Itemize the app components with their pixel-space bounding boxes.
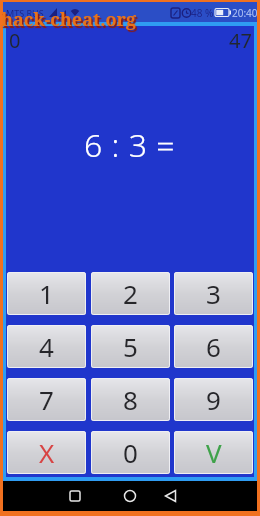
staticText: V	[206, 435, 222, 470]
button[interactable]: 5	[91, 325, 170, 368]
button[interactable]: 4	[7, 325, 86, 368]
button[interactable]: 0	[91, 431, 170, 474]
button[interactable]: 8	[91, 378, 170, 421]
staticText: 47	[229, 27, 252, 54]
staticText: 3	[206, 276, 221, 311]
button[interactable]: 3	[174, 272, 253, 315]
button[interactable]: X	[7, 431, 86, 474]
button[interactable]	[105, 481, 155, 511]
staticText: 9	[206, 382, 221, 417]
button[interactable]	[155, 481, 205, 511]
staticText: 0	[123, 435, 138, 470]
button[interactable]: 2	[91, 272, 170, 315]
staticText: 5	[123, 329, 138, 364]
staticText: 20:40	[232, 6, 258, 20]
button[interactable]: 1	[7, 272, 86, 315]
staticText: 7	[39, 382, 54, 417]
button[interactable]: V	[174, 431, 253, 474]
button[interactable]: 6	[174, 325, 253, 368]
staticText: 48 %	[191, 6, 214, 20]
button[interactable]	[55, 481, 105, 511]
button[interactable]: 9	[174, 378, 253, 421]
staticText: MTS RUS	[6, 7, 44, 19]
staticText: 8	[123, 382, 138, 417]
staticText: hack-cheat.org	[1, 7, 137, 32]
staticText: X	[39, 435, 55, 470]
staticText: 1	[39, 276, 54, 311]
staticText: 2	[123, 276, 138, 311]
staticText: 0	[9, 27, 21, 54]
button[interactable]: 7	[7, 378, 86, 421]
staticText: 6	[206, 329, 221, 364]
staticText: 6 : 3 =	[84, 123, 176, 163]
staticText: 4	[39, 329, 54, 364]
